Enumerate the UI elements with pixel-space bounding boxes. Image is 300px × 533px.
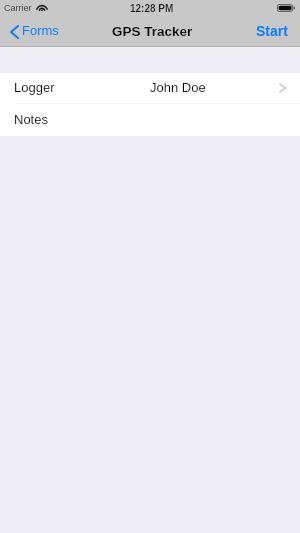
staticText: Carrier (4, 3, 32, 13)
other: Open logger (279, 83, 286, 93)
staticText: Logger (14, 80, 55, 95)
staticText: GPS Tracker (112, 24, 193, 39)
button[interactable]: Forms (0, 20, 66, 46)
button[interactable]: Notes (0, 104, 300, 136)
staticText: Notes (14, 112, 48, 127)
button[interactable]: Logger (0, 73, 300, 103)
button[interactable]: Start (245, 20, 300, 46)
staticText: Forms (22, 23, 59, 38)
staticText: John Doe (150, 80, 206, 95)
staticText: Start (256, 23, 288, 39)
staticText: 12:28 PM (130, 3, 174, 14)
